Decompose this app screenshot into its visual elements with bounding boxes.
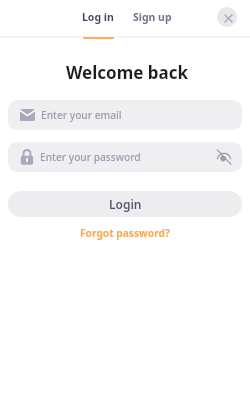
button[interactable]: Show password <box>214 147 234 167</box>
button[interactable]: Sign up <box>129 10 176 24</box>
staticText: Sign up <box>133 10 172 24</box>
staticText: Log in <box>82 10 114 24</box>
staticText: Enter your email <box>41 108 122 122</box>
staticText: Enter your password <box>40 150 141 164</box>
button[interactable]: Log in <box>78 10 118 39</box>
button[interactable]: Enter your password <box>8 142 242 172</box>
button[interactable]: Close <box>217 7 237 27</box>
button[interactable]: Enter your email <box>8 100 242 130</box>
staticText: Forgot password? <box>80 226 170 240</box>
staticText: Login <box>109 196 142 212</box>
button[interactable]: Login <box>8 191 242 217</box>
staticText: Welcome back <box>2 61 250 84</box>
button[interactable]: Forgot password? <box>76 224 174 242</box>
